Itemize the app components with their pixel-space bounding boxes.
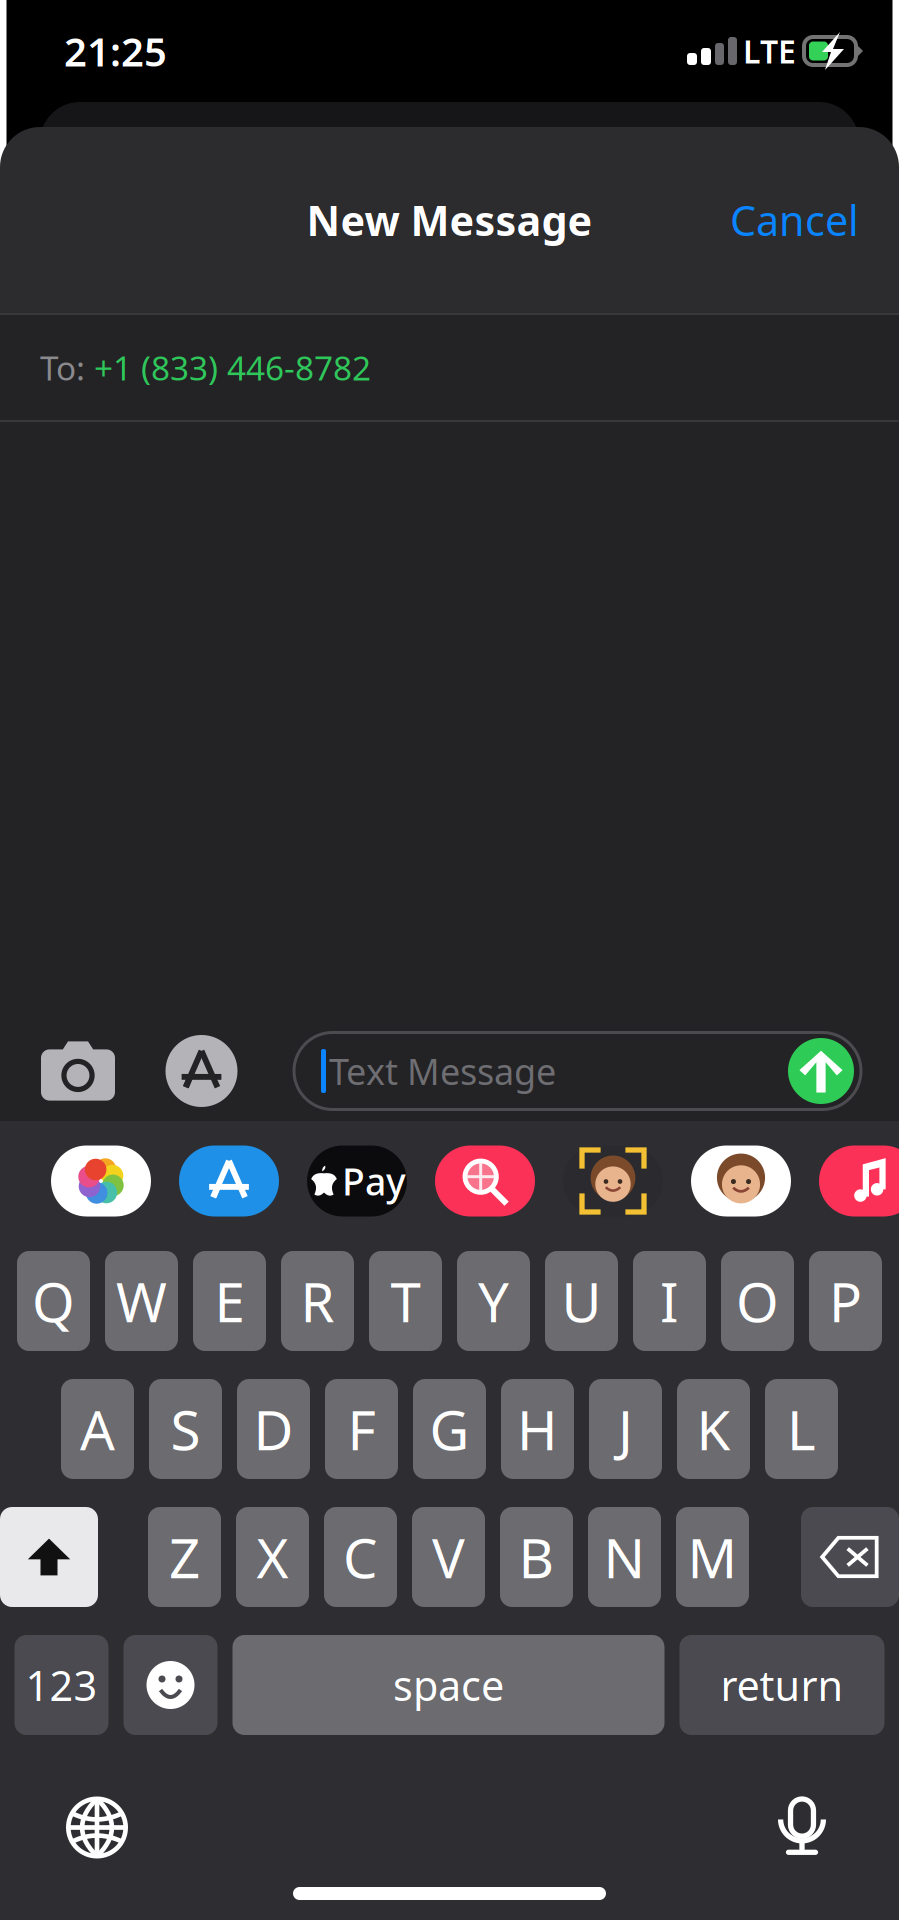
button[interactable]: H <box>501 1379 574 1479</box>
staticText: I <box>660 1265 679 1337</box>
button[interactable]: Apple Pay <box>307 1121 435 1241</box>
button[interactable]: Shift <box>0 1507 98 1607</box>
staticText: P <box>829 1265 862 1337</box>
staticText: C <box>343 1521 378 1593</box>
button[interactable]: F <box>325 1379 398 1479</box>
staticText: F <box>347 1393 375 1465</box>
button[interactable]: R <box>281 1251 354 1351</box>
staticText: W <box>116 1265 167 1337</box>
button[interactable]: Dictation <box>747 1772 857 1882</box>
staticText: E <box>214 1265 244 1337</box>
button[interactable]: K <box>677 1379 750 1479</box>
staticText: A <box>80 1393 115 1465</box>
button[interactable]: D <box>237 1379 310 1479</box>
staticText: M <box>687 1521 737 1593</box>
staticText: New Message <box>306 193 592 247</box>
staticText: return <box>720 1658 843 1712</box>
button[interactable]: Memoji <box>563 1121 691 1241</box>
button[interactable]: Photos <box>51 1121 179 1241</box>
button[interactable]: C <box>324 1507 397 1607</box>
button[interactable]: G <box>413 1379 486 1479</box>
button[interactable]: return <box>679 1635 884 1735</box>
button[interactable]: Music <box>819 1121 878 1241</box>
button[interactable]: W <box>105 1251 178 1351</box>
button[interactable]: Y <box>457 1251 530 1351</box>
button[interactable]: V <box>412 1507 485 1607</box>
button[interactable]: Next keyboard <box>42 1772 152 1882</box>
button[interactable]: B <box>500 1507 573 1607</box>
staticText: Pay <box>342 1156 406 1206</box>
button[interactable]: Z <box>148 1507 221 1607</box>
button[interactable]: 123 <box>14 1635 108 1735</box>
button[interactable]: U <box>545 1251 618 1351</box>
staticText: J <box>618 1393 633 1465</box>
button[interactable]: O <box>721 1251 794 1351</box>
staticText: Y <box>478 1265 509 1337</box>
staticText: +1 (833) 446-8782 <box>94 345 371 390</box>
staticText: 123 <box>25 1658 97 1712</box>
button[interactable]: S <box>149 1379 222 1479</box>
staticText: 21:25 <box>64 24 167 77</box>
button[interactable]: L <box>765 1379 838 1479</box>
staticText: D <box>253 1393 293 1465</box>
button[interactable]: A <box>61 1379 134 1479</box>
button[interactable]: Q <box>17 1251 90 1351</box>
staticText: B <box>518 1521 554 1593</box>
button[interactable]: E <box>193 1251 266 1351</box>
button[interactable]: J <box>589 1379 662 1479</box>
button[interactable]: Cancel <box>708 179 881 261</box>
button[interactable]: Delete <box>801 1507 899 1607</box>
button[interactable]: M <box>676 1507 749 1607</box>
button[interactable]: N <box>588 1507 661 1607</box>
staticText: space <box>393 1658 504 1712</box>
button[interactable]: T <box>369 1251 442 1351</box>
staticText: L <box>787 1393 816 1465</box>
staticText: K <box>696 1393 730 1465</box>
staticText: T <box>390 1265 420 1337</box>
staticText: H <box>517 1393 558 1465</box>
staticText: Z <box>169 1521 200 1593</box>
button[interactable]: space <box>232 1635 664 1735</box>
staticText: LTE <box>743 30 796 72</box>
staticText: To: <box>40 345 94 390</box>
button[interactable]: I <box>633 1251 706 1351</box>
staticText: S <box>170 1393 200 1465</box>
staticText: U <box>561 1265 601 1337</box>
button[interactable]: App Store <box>179 1121 307 1241</box>
staticText: G <box>429 1393 469 1465</box>
button[interactable]: X <box>236 1507 309 1607</box>
button[interactable]: Images <box>435 1121 563 1241</box>
button[interactable]: Memoji stickers <box>691 1121 819 1241</box>
button[interactable]: Camera <box>0 1021 156 1121</box>
staticText: X <box>256 1521 288 1593</box>
staticText: O <box>736 1265 779 1337</box>
button[interactable]: Send <box>785 1035 857 1107</box>
staticText: V <box>432 1521 465 1593</box>
staticText: Q <box>32 1265 75 1337</box>
staticText: Text Message <box>329 1047 556 1095</box>
staticText: Cancel <box>730 193 859 247</box>
staticText: N <box>603 1521 645 1593</box>
button[interactable]: Emoji <box>123 1635 217 1735</box>
button[interactable]: P <box>809 1251 882 1351</box>
staticText: R <box>300 1265 334 1337</box>
button[interactable]: Apps <box>156 1021 247 1121</box>
